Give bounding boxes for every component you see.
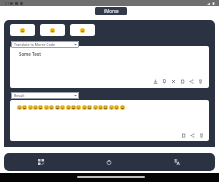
button[interactable]: Action: [152, 78, 158, 84]
button[interactable]: Tab: [10, 24, 35, 36]
button[interactable]: Action: [197, 78, 203, 84]
staticText: Translate to Morse Code: [14, 42, 56, 47]
staticText: Some Text: [19, 51, 41, 57]
button[interactable]: Translate to Morse Code: [11, 41, 79, 48]
staticText: iMorse: [104, 8, 119, 14]
button[interactable]: Translate: [157, 153, 197, 171]
button[interactable]: Action: [170, 78, 176, 84]
button[interactable]: Tab: [70, 24, 95, 36]
button[interactable]: Flashlight: [89, 153, 129, 171]
button[interactable]: Action: [179, 78, 185, 84]
button[interactable]: Action: [189, 132, 195, 138]
button[interactable]: Keyboard: [21, 153, 61, 171]
button[interactable]: Action: [161, 78, 167, 84]
staticText: 1:15: [4, 1, 12, 6]
button[interactable]: Result: [11, 92, 79, 99]
staticText: Result: [14, 93, 25, 98]
button[interactable]: Action: [198, 132, 204, 138]
button[interactable]: Tab: [40, 24, 65, 36]
button[interactable]: Action: [180, 132, 186, 138]
button[interactable]: Action: [188, 78, 194, 84]
